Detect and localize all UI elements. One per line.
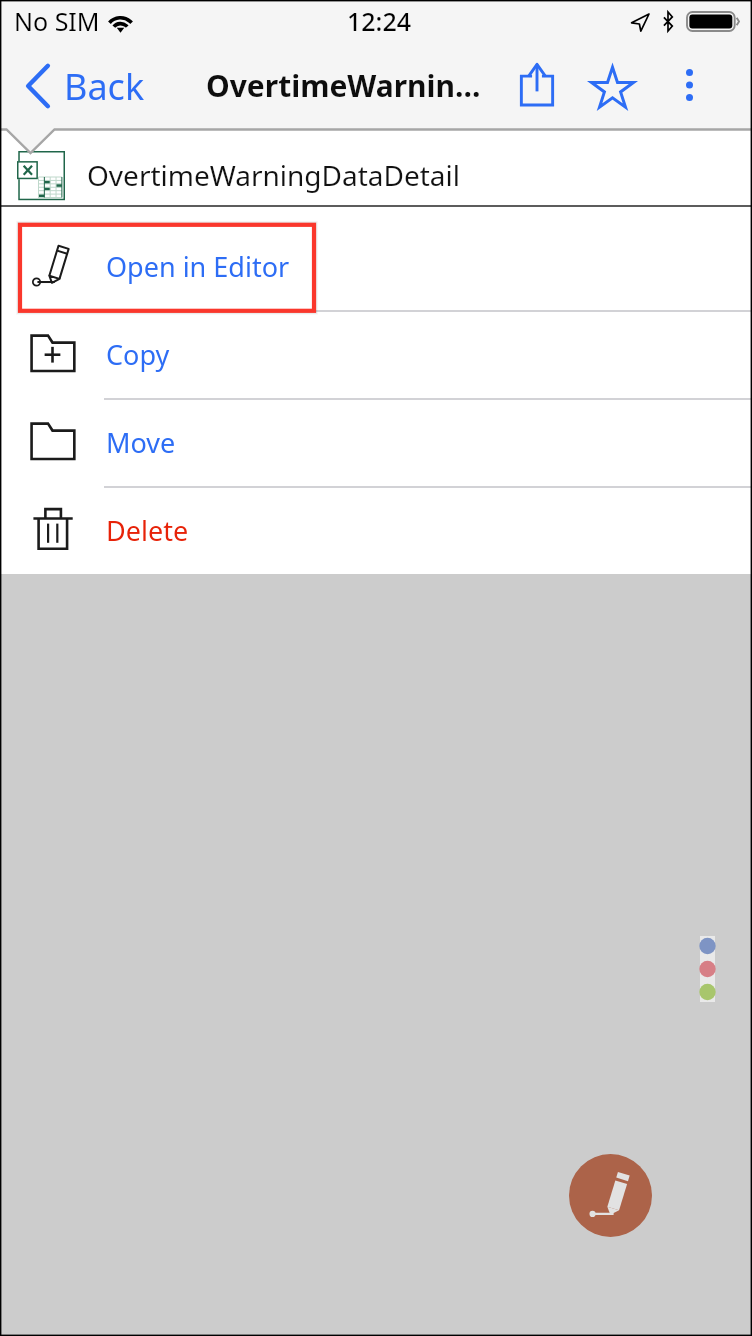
staticText: Copy: [106, 336, 170, 373]
button[interactable]: Back: [14, 58, 154, 120]
staticText: Move: [106, 424, 176, 461]
staticText: OvertimeWarningDataDetail: [87, 156, 461, 194]
button[interactable]: More options: [661, 57, 717, 113]
button[interactable]: Edit: [569, 1154, 652, 1237]
button[interactable]: Share: [509, 56, 565, 112]
staticText: Open in Editor: [106, 248, 290, 285]
staticText: Back: [64, 62, 145, 111]
button[interactable]: Delete: [0, 486, 752, 574]
staticText: OvertimeWarnin...: [206, 65, 481, 106]
staticText: Delete: [106, 512, 189, 549]
staticText: No SIM: [14, 4, 100, 38]
button[interactable]: Move: [0, 398, 752, 486]
button[interactable]: Favorite: [584, 59, 640, 115]
button[interactable]: Copy: [0, 310, 752, 398]
button[interactable]: Open in Editor: [0, 222, 752, 310]
staticText: 12:24: [347, 4, 412, 38]
